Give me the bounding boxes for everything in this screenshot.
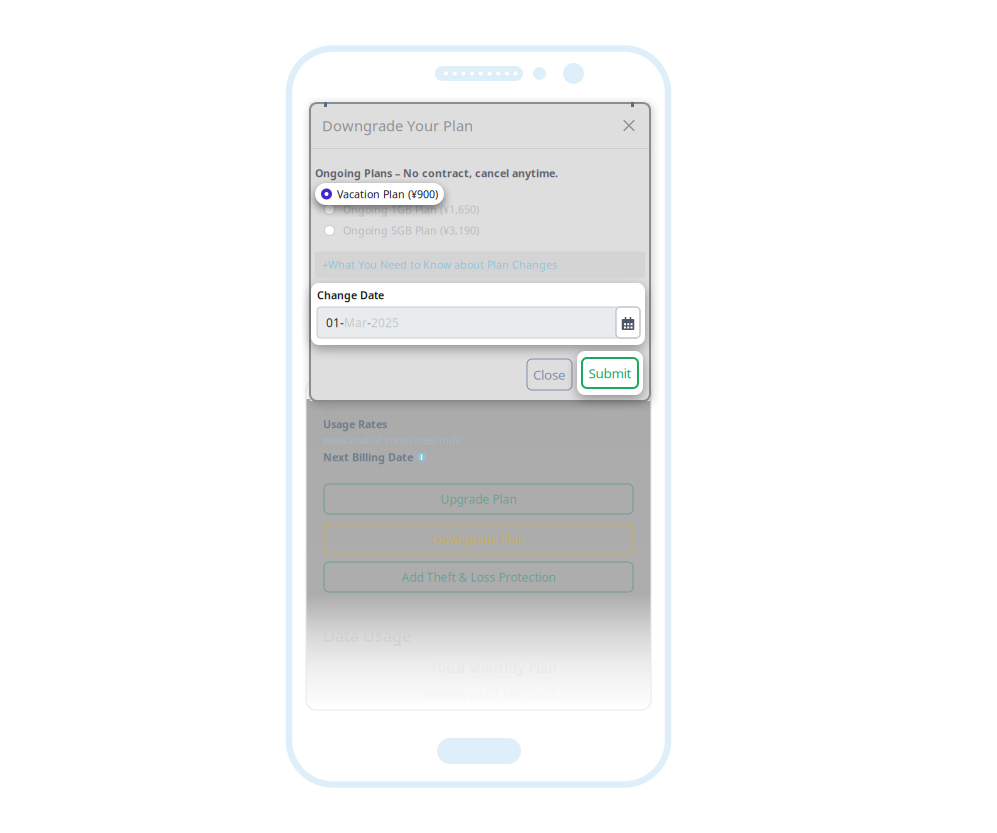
button[interactable]: Ongoing 5GB Plan (¥3,190) [315, 223, 479, 237]
staticText: - [367, 314, 371, 330]
button[interactable]: Pick date [616, 307, 640, 338]
button[interactable]: Add Theft & Loss Protection [324, 562, 633, 592]
button[interactable]: Close [620, 116, 638, 134]
button[interactable]: Vacation Plan (¥900) [315, 183, 444, 205]
staticText: Downgrade Plan [432, 531, 524, 547]
staticText: www.mobal.com/rates/mifi/ [323, 433, 462, 447]
staticText: 2025 [371, 314, 399, 330]
staticText: Mar [344, 314, 367, 330]
staticText: Next Billing Date [323, 450, 413, 464]
staticText: Close [533, 366, 566, 383]
staticText: Vacation Plan (¥900) [337, 187, 438, 201]
button[interactable]: Ongoing 1GB Plan (¥1,650) [315, 202, 479, 216]
staticText: Ongoing 1GB Plan (¥1,650) [343, 202, 479, 216]
staticText: Downgrade Your Plan [322, 116, 473, 135]
button[interactable]: Submit [577, 351, 643, 395]
staticText: Change Date [317, 288, 384, 302]
button[interactable]: Downgrade Plan [324, 524, 633, 554]
staticText: Upgrade Plan [440, 491, 516, 507]
staticText: Usage Rates [323, 417, 387, 431]
button[interactable]: Upgrade Plan [324, 484, 633, 514]
staticText: Add Theft & Loss Protection [401, 569, 555, 585]
button[interactable]: +What You Need to Know about Plan Change… [315, 251, 645, 277]
staticText: Ongoing Plans – No contract, cancel anyt… [315, 166, 558, 180]
staticText: Ongoing 5GB Plan (¥3,190) [343, 223, 479, 237]
staticText: 01- [326, 314, 344, 330]
button[interactable]: Close [527, 359, 572, 390]
staticText: Data Usage [323, 625, 411, 646]
staticText: Submit [588, 364, 631, 382]
staticText: ¥0 [323, 404, 335, 418]
staticText: +What You Need to Know about Plan Change… [322, 257, 557, 272]
